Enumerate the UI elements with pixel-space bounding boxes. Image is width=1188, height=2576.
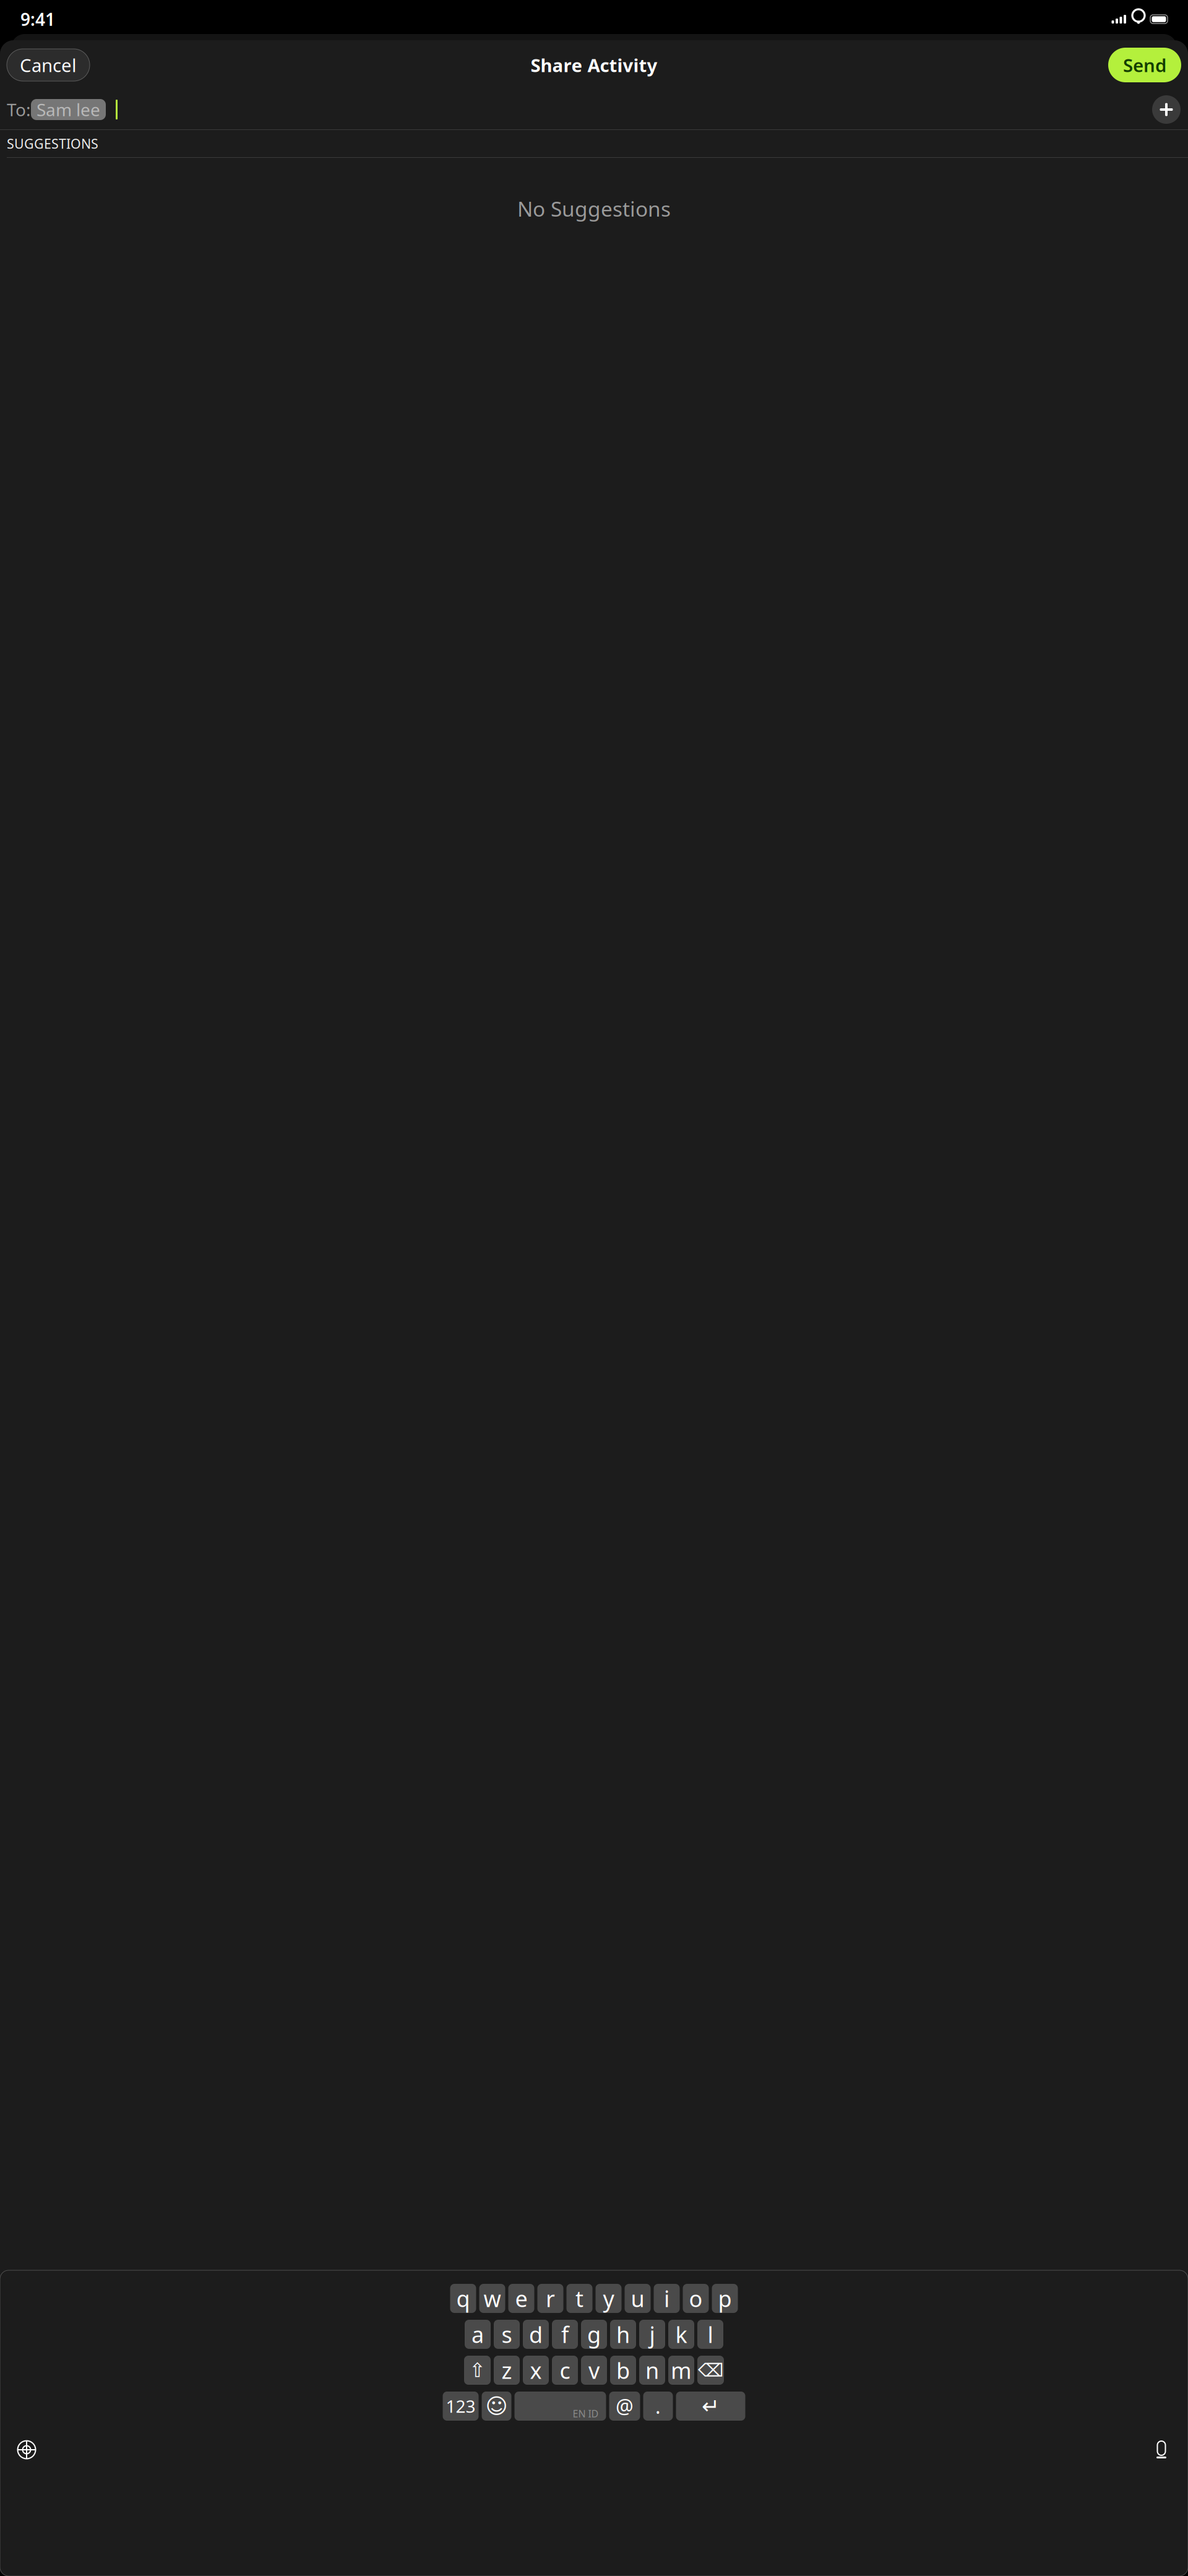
staticText: y	[603, 2284, 614, 2313]
button[interactable]: h	[610, 2320, 636, 2349]
staticText: To:	[7, 98, 31, 121]
button[interactable]: a	[465, 2320, 491, 2349]
staticText: ↵	[702, 2394, 720, 2418]
button[interactable]: Return	[676, 2392, 745, 2421]
button[interactable]: Space	[514, 2392, 606, 2421]
staticText: d	[529, 2320, 543, 2349]
staticText: Send	[1123, 53, 1166, 77]
button[interactable]: j	[639, 2320, 665, 2349]
button[interactable]: m	[668, 2356, 694, 2385]
staticText: Sam lee	[37, 98, 100, 121]
staticText: Cancel	[20, 53, 77, 77]
staticText: v	[588, 2355, 600, 2385]
staticText: g	[587, 2320, 601, 2349]
staticText: @	[616, 2393, 634, 2419]
staticText: f	[561, 2320, 569, 2349]
staticText: ⌫	[698, 2360, 723, 2381]
button[interactable]: v	[581, 2356, 607, 2385]
button[interactable]: w	[479, 2284, 505, 2313]
button[interactable]: Cancel	[7, 49, 90, 81]
button[interactable]: @	[609, 2392, 640, 2421]
staticText: t	[575, 2284, 583, 2313]
button[interactable]: 123	[443, 2392, 479, 2421]
button[interactable]: y	[596, 2284, 622, 2313]
button[interactable]: k	[668, 2320, 694, 2349]
button[interactable]: d	[523, 2320, 549, 2349]
staticText: w	[484, 2284, 501, 2313]
staticText: u	[631, 2284, 644, 2313]
staticText: c	[560, 2355, 570, 2385]
staticText: r	[546, 2284, 555, 2313]
staticText: s	[501, 2320, 512, 2349]
staticText: h	[616, 2320, 630, 2349]
staticText: a	[471, 2320, 484, 2349]
button[interactable]: .	[643, 2392, 673, 2421]
staticText: e	[515, 2284, 527, 2313]
button[interactable]: r	[537, 2284, 563, 2313]
button[interactable]: Switch keyboard	[12, 2436, 41, 2464]
staticText: q	[456, 2284, 470, 2313]
button[interactable]: Shift	[464, 2356, 491, 2385]
button[interactable]: u	[625, 2284, 651, 2313]
button[interactable]: Send	[1108, 48, 1181, 82]
staticText: i	[664, 2284, 669, 2313]
staticText: .	[655, 2393, 661, 2419]
staticText: k	[675, 2320, 687, 2349]
button[interactable]: Delete	[697, 2356, 724, 2385]
button[interactable]: g	[581, 2320, 607, 2349]
staticText: l	[708, 2320, 713, 2349]
staticText: o	[689, 2284, 703, 2313]
button[interactable]: q	[450, 2284, 476, 2313]
staticText: No Suggestions	[517, 195, 671, 222]
button[interactable]: t	[566, 2284, 592, 2313]
staticText: n	[645, 2355, 659, 2385]
staticText: EN ID	[573, 2407, 599, 2420]
button[interactable]: s	[494, 2320, 520, 2349]
staticText: 123	[446, 2395, 476, 2418]
staticText: j	[649, 2320, 655, 2349]
button[interactable]: Emoji	[482, 2392, 511, 2421]
button[interactable]: p	[712, 2284, 738, 2313]
button[interactable]: i	[654, 2284, 680, 2313]
staticText: ⇧	[469, 2359, 486, 2381]
button[interactable]: e	[508, 2284, 534, 2313]
button[interactable]: z	[494, 2356, 520, 2385]
staticText: m	[671, 2355, 692, 2385]
button[interactable]: Sam lee	[31, 99, 106, 120]
button[interactable]: Add recipient	[1151, 95, 1181, 124]
staticText: SUGGESTIONS	[7, 135, 98, 152]
button[interactable]: o	[683, 2284, 709, 2313]
staticText: x	[530, 2355, 542, 2385]
button[interactable]: Dictate	[1147, 2436, 1176, 2464]
button[interactable]: x	[523, 2356, 549, 2385]
button[interactable]: n	[639, 2356, 665, 2385]
staticText: p	[718, 2284, 732, 2313]
staticText: b	[616, 2355, 630, 2385]
staticText: 9:41	[20, 8, 55, 31]
button[interactable]: c	[552, 2356, 578, 2385]
button[interactable]: b	[610, 2356, 636, 2385]
staticText: z	[501, 2355, 512, 2385]
button[interactable]: f	[552, 2320, 578, 2349]
button[interactable]: l	[697, 2320, 723, 2349]
staticText: Share Activity	[531, 53, 657, 77]
staticText: ☺	[485, 2394, 508, 2418]
